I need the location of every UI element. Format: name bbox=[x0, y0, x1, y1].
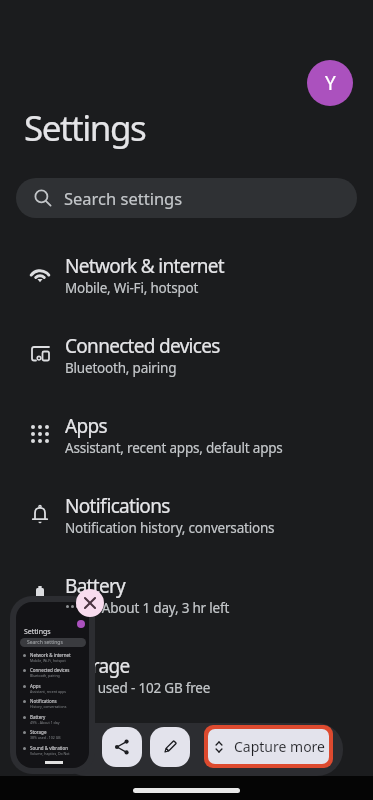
button[interactable] bbox=[150, 727, 190, 767]
staticText: Bluetooth, pairing bbox=[30, 673, 60, 678]
staticText: Battery bbox=[65, 573, 126, 599]
staticText: Connected devices bbox=[30, 667, 70, 673]
staticText: Sound & vibration bbox=[30, 745, 68, 751]
staticText: Connected devices bbox=[65, 333, 220, 359]
staticText: Settings bbox=[24, 104, 146, 152]
button[interactable]: Network & internet bbox=[0, 227, 373, 307]
staticText: Search settings bbox=[64, 187, 183, 209]
staticText: Assistant, recent apps, default apps bbox=[65, 439, 283, 457]
staticText: Storage bbox=[65, 653, 130, 679]
button[interactable] bbox=[10, 596, 95, 774]
staticText: 49% - About 1 day, 3 hr left bbox=[65, 599, 230, 617]
button[interactable] bbox=[102, 727, 142, 767]
staticText: Settings bbox=[24, 627, 51, 637]
staticText: Notifications bbox=[65, 493, 170, 519]
button[interactable]: Apps bbox=[0, 387, 373, 467]
staticText: Volume, haptics, Do Not bbox=[30, 751, 70, 756]
staticText: Apps bbox=[65, 413, 107, 439]
button[interactable]: Battery bbox=[0, 547, 373, 627]
staticText: 28% used - 102 GB free bbox=[65, 679, 211, 697]
staticText: Search settings bbox=[27, 639, 63, 646]
button[interactable]: Notifications bbox=[0, 467, 373, 547]
button[interactable]: Y bbox=[307, 60, 353, 106]
staticText: 49% - About 1 day bbox=[30, 720, 60, 725]
staticText: Battery bbox=[30, 714, 46, 720]
staticText: Storage bbox=[30, 729, 47, 735]
button[interactable] bbox=[76, 589, 104, 617]
button[interactable]: Search settings bbox=[16, 178, 357, 218]
staticText: Mobile, Wi-Fi, hotspot bbox=[65, 279, 199, 297]
staticText: Notification history, conversations bbox=[65, 519, 275, 537]
button[interactable]: Connected devices bbox=[0, 307, 373, 387]
staticText: 38% used - 102 GB bbox=[30, 735, 61, 740]
staticText: Mobile, Wi-Fi, hotspot bbox=[30, 658, 66, 663]
staticText: Network & internet bbox=[65, 253, 225, 279]
button[interactable]: Capture more bbox=[204, 725, 333, 768]
staticText: History, conversations bbox=[30, 704, 67, 709]
staticText: Network & internet bbox=[30, 652, 71, 658]
staticText: Assistant, recent apps bbox=[30, 689, 66, 694]
button[interactable]: Storage bbox=[0, 627, 373, 707]
staticText: Apps bbox=[30, 683, 41, 689]
staticText: Capture more bbox=[234, 737, 326, 756]
staticText: Y bbox=[325, 70, 336, 96]
staticText: Bluetooth, pairing bbox=[65, 359, 177, 377]
staticText: Notifications bbox=[30, 698, 57, 704]
